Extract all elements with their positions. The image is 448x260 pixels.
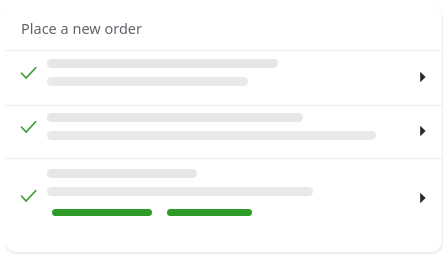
button[interactable]: Place a new order — [5, 5, 442, 50]
staticText: Place a new order — [21, 18, 143, 38]
other: Open order details — [420, 193, 426, 203]
button[interactable]: Open order details — [5, 106, 442, 158]
other: Open order details — [420, 72, 426, 82]
button[interactable]: Open order details — [5, 159, 442, 252]
button[interactable]: Open order details — [5, 51, 442, 105]
other: Open order details — [420, 126, 426, 136]
